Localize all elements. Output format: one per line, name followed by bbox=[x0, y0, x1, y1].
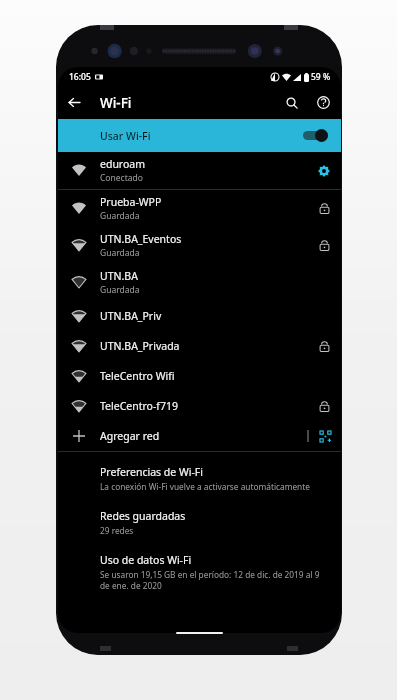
button[interactable]: Scan QR code bbox=[309, 421, 341, 451]
button[interactable]: Preferencias de Wi-Fi bbox=[58, 457, 341, 501]
staticText: TeleCentro-f719 bbox=[100, 399, 178, 413]
staticText: TeleCentro Wifi bbox=[100, 369, 175, 383]
staticText: 29 redes bbox=[100, 525, 134, 536]
button[interactable]: UTN.BA_Eventos bbox=[58, 227, 341, 264]
staticText: Guardada bbox=[100, 210, 140, 222]
staticText: Guardada bbox=[100, 284, 140, 296]
staticText: eduroam bbox=[100, 157, 146, 171]
staticText: Prueba-WPP bbox=[100, 195, 162, 209]
button[interactable]: Back bbox=[58, 86, 91, 119]
button[interactable]: Prueba-WPP bbox=[58, 190, 341, 227]
staticText: 16:05 bbox=[69, 71, 91, 83]
staticText: Conectado bbox=[100, 172, 143, 184]
button[interactable]: Uso de datos Wi-Fi bbox=[58, 545, 341, 600]
staticText: Preferencias de Wi-Fi bbox=[100, 465, 203, 479]
staticText: Se usaron 19,15 GB en el período: 12 de … bbox=[100, 569, 325, 591]
staticText: Wi-Fi bbox=[100, 94, 132, 112]
staticText: UTN.BA_Eventos bbox=[100, 232, 182, 246]
staticText: La conexión Wi-Fi vuelve a activarse aut… bbox=[100, 481, 310, 492]
button[interactable]: TeleCentro-f719 bbox=[58, 391, 341, 421]
staticText: Uso de datos Wi-Fi bbox=[100, 553, 192, 567]
button[interactable]: Help bbox=[308, 86, 338, 119]
staticText: Redes guardadas bbox=[100, 509, 186, 523]
button[interactable]: Redes guardadas bbox=[58, 501, 341, 545]
staticText: 59 % bbox=[311, 71, 331, 83]
staticText: UTN.BA_Privada bbox=[100, 339, 180, 353]
button[interactable]: eduroam bbox=[58, 152, 341, 189]
button[interactable]: Agregar red bbox=[58, 421, 341, 451]
button[interactable]: TeleCentro Wifi bbox=[58, 361, 341, 391]
button[interactable]: Usar Wi-Fi bbox=[58, 119, 341, 152]
button[interactable]: UTN.BA bbox=[58, 264, 341, 301]
staticText: Usar Wi-Fi bbox=[100, 129, 151, 143]
button[interactable]: Search bbox=[275, 86, 308, 119]
staticText: UTN.BA bbox=[100, 269, 138, 283]
staticText: Guardada bbox=[100, 247, 140, 259]
button[interactable]: UTN.BA_Privada bbox=[58, 331, 341, 361]
button[interactable]: UTN.BA_Priv bbox=[58, 301, 341, 331]
staticText: Agregar red bbox=[100, 429, 307, 443]
staticText: UTN.BA_Priv bbox=[100, 309, 162, 323]
other: Settings bbox=[318, 165, 330, 177]
